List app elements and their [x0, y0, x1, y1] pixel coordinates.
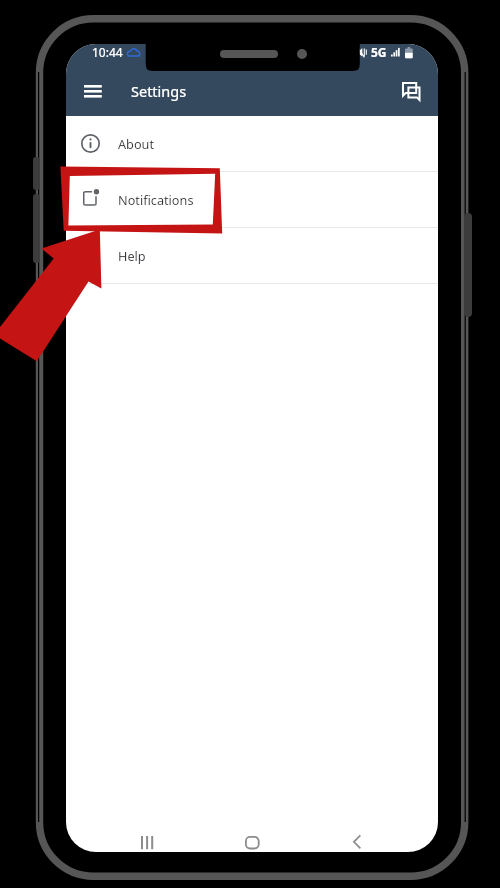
staticText: Notifications [118, 191, 194, 208]
button[interactable]: About [66, 116, 438, 172]
button[interactable]: Help [66, 228, 438, 284]
button[interactable]: Home [232, 832, 272, 852]
staticText: 10:44 [92, 44, 123, 60]
button[interactable]: Notifications [66, 172, 438, 228]
button[interactable]: Chat [387, 67, 435, 115]
button[interactable]: Open navigation menu [69, 67, 117, 115]
button[interactable]: Back [337, 832, 377, 852]
button[interactable]: Recent apps [127, 832, 167, 852]
staticText: Settings [131, 81, 187, 101]
staticText: Help [118, 247, 146, 264]
staticText: 5G [371, 44, 387, 60]
staticText: About [118, 135, 155, 152]
